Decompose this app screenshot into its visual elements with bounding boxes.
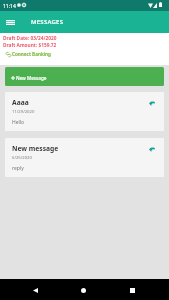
staticText: Connect Banking: [12, 51, 51, 57]
button[interactable]: Reply: [147, 99, 156, 108]
button[interactable]: Recent apps: [126, 284, 139, 297]
staticText: MESSAGES: [31, 18, 64, 26]
staticText: New Message: [16, 75, 47, 81]
staticText: New message: [12, 144, 59, 153]
staticText: Hello: [12, 119, 25, 126]
button[interactable]: New Message: [5, 67, 164, 86]
button[interactable]: Aaaa: [5, 92, 164, 131]
button[interactable]: Open navigation menu: [2, 14, 18, 30]
staticText: 11/29/2020: [12, 109, 35, 115]
staticText: Draft Amount: $159.72: [3, 42, 57, 49]
staticText: Draft Date: 03/24/2020: [3, 35, 57, 42]
button[interactable]: Connect Banking: [6, 51, 51, 57]
staticText: reply: [12, 165, 24, 172]
button[interactable]: Reply: [147, 145, 156, 154]
button[interactable]: Back: [29, 284, 42, 297]
staticText: Aaaa: [12, 98, 29, 107]
button[interactable]: Home: [77, 284, 90, 297]
staticText: 11:14: [3, 3, 16, 10]
button[interactable]: New message: [5, 138, 164, 177]
staticText: 6/25/2020: [12, 155, 32, 161]
